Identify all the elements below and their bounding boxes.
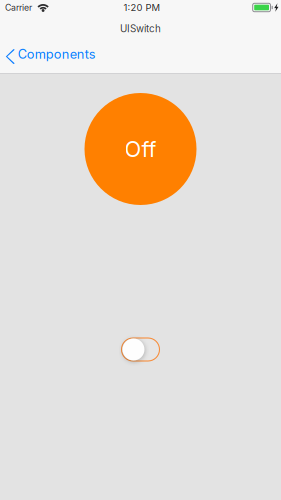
staticText: Components [18,46,96,62]
staticText: UISwitch [120,23,161,34]
staticText: Off [124,136,156,162]
button[interactable]: Components [0,35,106,73]
button[interactable]: Switch, off [121,338,159,361]
button[interactable]: Off [84,93,196,205]
staticText: Carrier [5,2,32,13]
staticText: 1:20 PM [123,2,160,13]
